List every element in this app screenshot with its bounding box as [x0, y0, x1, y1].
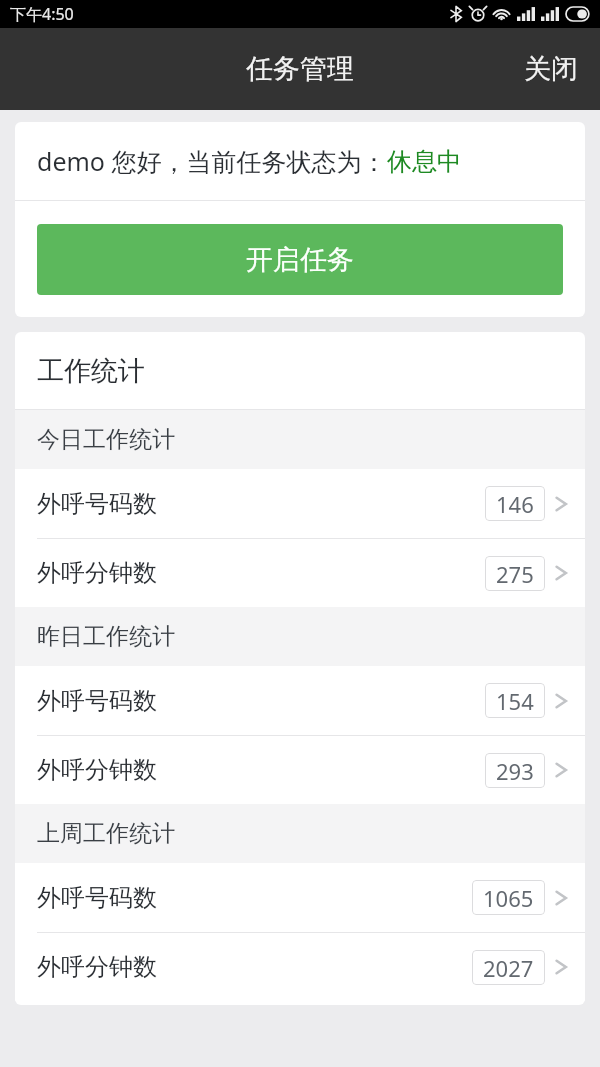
button[interactable]: 外呼号码数: [15, 469, 585, 538]
staticText: 275: [496, 559, 534, 589]
staticText: 外呼分钟数: [37, 952, 157, 982]
button[interactable]: 外呼分钟数: [15, 736, 585, 804]
button[interactable]: 外呼号码数: [15, 666, 585, 735]
button[interactable]: 外呼分钟数: [15, 539, 585, 607]
staticText: 外呼分钟数: [37, 755, 157, 785]
button[interactable]: 外呼分钟数: [15, 933, 585, 1001]
staticText: 外呼号码数: [37, 489, 157, 519]
staticText: 外呼号码数: [37, 883, 157, 913]
staticText: 293: [496, 756, 534, 786]
staticText: 工作统计: [37, 354, 145, 388]
staticText: 休息中: [387, 146, 462, 177]
staticText: 昨日工作统计: [37, 622, 175, 651]
staticText: 开启任务: [246, 243, 354, 277]
staticText: 外呼号码数: [37, 686, 157, 716]
staticText: 1065: [483, 883, 534, 913]
staticText: 154: [496, 686, 534, 716]
staticText: 146: [496, 489, 534, 519]
button[interactable]: 外呼号码数: [15, 863, 585, 932]
staticText: 关闭: [524, 52, 578, 86]
staticText: 2027: [483, 953, 534, 983]
staticText: 今日工作统计: [37, 425, 175, 454]
staticText: 外呼分钟数: [37, 558, 157, 588]
button[interactable]: 关闭: [502, 28, 600, 110]
staticText: 上周工作统计: [37, 819, 175, 848]
staticText: demo 您好，当前任务状态为：: [37, 144, 387, 178]
button[interactable]: 开启任务: [37, 224, 563, 295]
staticText: 任务管理: [246, 52, 354, 86]
staticText: 下午4:50: [10, 3, 74, 25]
